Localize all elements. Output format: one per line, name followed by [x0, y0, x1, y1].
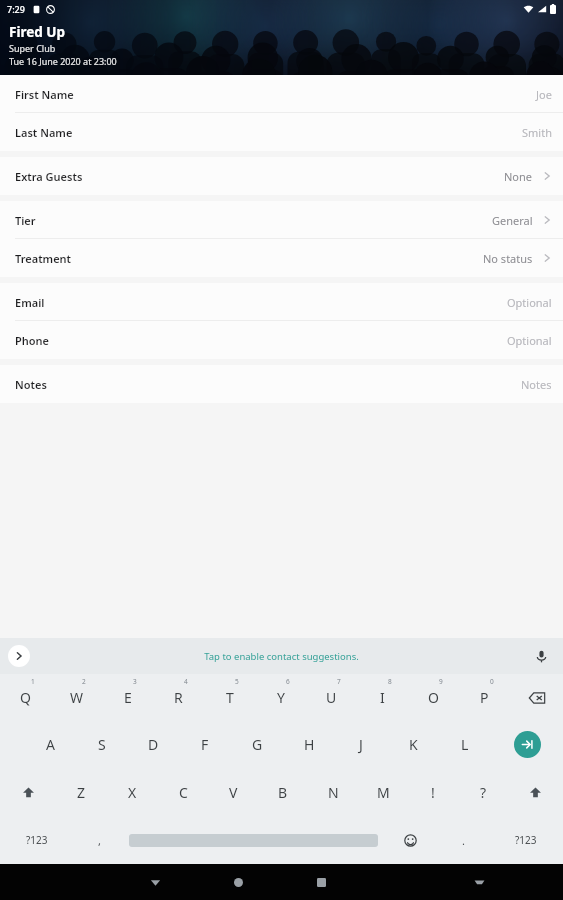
- staticText: Super Club: [9, 42, 56, 54]
- button[interactable]: Email: [0, 283, 563, 321]
- button[interactable]: Home: [197, 864, 280, 900]
- staticText: S: [98, 735, 106, 754]
- button[interactable]: ?: [458, 768, 508, 816]
- button[interactable]: J: [335, 721, 387, 768]
- button[interactable]: Tier: [0, 201, 563, 239]
- button[interactable]: A: [25, 721, 76, 768]
- button[interactable]: Recent apps: [280, 864, 363, 900]
- staticText: N: [328, 783, 339, 802]
- button[interactable]: E: [102, 674, 153, 721]
- button[interactable]: Backspace: [510, 674, 563, 721]
- button[interactable]: Last Name: [0, 113, 563, 151]
- button[interactable]: H: [283, 721, 335, 768]
- button[interactable]: Expand suggestions: [8, 645, 30, 667]
- button[interactable]: W: [51, 674, 102, 721]
- button[interactable]: B: [258, 768, 308, 816]
- staticText: !: [431, 783, 435, 802]
- button[interactable]: Tap to enable contact suggestions.: [204, 650, 359, 663]
- staticText: 5: [235, 677, 239, 686]
- staticText: 2: [82, 677, 86, 686]
- staticText: Notes: [521, 377, 552, 392]
- staticText: 9: [439, 677, 443, 686]
- staticText: L: [461, 735, 469, 754]
- staticText: 0: [490, 677, 494, 686]
- staticText: B: [278, 783, 288, 802]
- staticText: G: [252, 735, 263, 754]
- staticText: Z: [77, 783, 86, 802]
- button[interactable]: R: [153, 674, 204, 721]
- button[interactable]: !: [408, 768, 458, 816]
- button[interactable]: Treatment: [0, 239, 563, 277]
- staticText: Smith: [522, 125, 552, 140]
- staticText: General: [492, 213, 533, 228]
- button[interactable]: Hide keyboard: [438, 864, 521, 900]
- staticText: Email: [15, 295, 45, 310]
- staticText: None: [504, 169, 533, 184]
- staticText: 7: [337, 677, 341, 686]
- staticText: Joe: [536, 87, 552, 102]
- staticText: 1: [31, 677, 35, 686]
- button[interactable]: Shift: [508, 768, 563, 816]
- staticText: T: [226, 688, 234, 707]
- staticText: I: [380, 688, 385, 707]
- staticText: M: [377, 783, 390, 802]
- staticText: C: [179, 783, 188, 802]
- button[interactable]: K: [387, 721, 439, 768]
- staticText: ?: [480, 783, 487, 802]
- button[interactable]: .: [438, 816, 488, 864]
- staticText: W: [70, 688, 84, 707]
- staticText: F: [201, 735, 209, 754]
- button[interactable]: T: [204, 674, 255, 721]
- button[interactable]: U: [306, 674, 357, 721]
- button[interactable]: Back: [114, 864, 197, 900]
- staticText: 7:29: [7, 3, 25, 15]
- staticText: 6: [286, 677, 290, 686]
- staticText: H: [304, 735, 315, 754]
- button[interactable]: First Name: [0, 75, 563, 113]
- staticText: ?123: [515, 833, 537, 847]
- button[interactable]: P: [459, 674, 510, 721]
- staticText: U: [326, 688, 337, 707]
- button[interactable]: Emoji: [383, 816, 438, 864]
- button[interactable]: Notes: [0, 365, 563, 403]
- button[interactable]: O: [408, 674, 459, 721]
- button[interactable]: V: [208, 768, 258, 816]
- staticText: Optional: [507, 333, 552, 348]
- button[interactable]: ?123: [488, 816, 563, 864]
- button[interactable]: S: [76, 721, 127, 768]
- button[interactable]: L: [439, 721, 491, 768]
- button[interactable]: C: [158, 768, 208, 816]
- staticText: First Name: [15, 87, 74, 102]
- button[interactable]: Phone: [0, 321, 563, 359]
- button[interactable]: Y: [255, 674, 306, 721]
- staticText: R: [174, 688, 183, 707]
- staticText: V: [229, 783, 238, 802]
- button[interactable]: Next field: [514, 731, 541, 758]
- staticText: Q: [20, 688, 31, 707]
- button[interactable]: Z: [56, 768, 107, 816]
- staticText: Y: [277, 688, 285, 707]
- staticText: K: [409, 735, 418, 754]
- button[interactable]: I: [357, 674, 408, 721]
- button[interactable]: Q: [0, 674, 51, 721]
- button[interactable]: ,: [74, 816, 124, 864]
- button[interactable]: Shift: [0, 768, 56, 816]
- staticText: ?123: [26, 833, 48, 847]
- button[interactable]: Extra Guests: [0, 157, 563, 195]
- staticText: O: [428, 688, 439, 707]
- staticText: Extra Guests: [15, 169, 83, 184]
- staticText: E: [124, 688, 132, 707]
- staticText: 4: [184, 677, 188, 686]
- button[interactable]: N: [308, 768, 358, 816]
- button[interactable]: M: [358, 768, 408, 816]
- button[interactable]: G: [231, 721, 283, 768]
- button[interactable]: Voice input: [531, 646, 551, 666]
- staticText: Last Name: [15, 125, 73, 140]
- button[interactable]: ?123: [0, 816, 74, 864]
- staticText: P: [480, 688, 489, 707]
- button[interactable]: X: [107, 768, 158, 816]
- staticText: 8: [388, 677, 392, 686]
- button[interactable]: D: [127, 721, 179, 768]
- button[interactable]: F: [179, 721, 231, 768]
